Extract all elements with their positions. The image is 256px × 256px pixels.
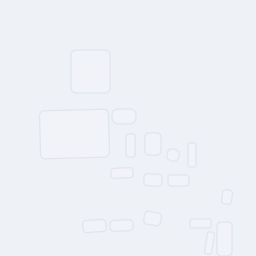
button[interactable]: Item 3 xyxy=(112,109,136,124)
button[interactable]: Item 9 xyxy=(144,174,162,186)
button[interactable]: Item 5 xyxy=(145,133,161,155)
button[interactable]: Item 14 xyxy=(144,212,161,225)
button[interactable]: Item 15 xyxy=(190,219,211,228)
button[interactable]: Item 8 xyxy=(111,168,133,178)
button[interactable]: Item 7 xyxy=(188,143,196,167)
button[interactable]: Item 4 xyxy=(126,134,135,157)
button[interactable]: Item 17 xyxy=(217,222,232,256)
button[interactable]: Item 11 xyxy=(222,190,232,204)
button[interactable]: Item 10 xyxy=(168,175,189,186)
button[interactable]: Item 13 xyxy=(110,220,133,231)
button[interactable]: Item 16 xyxy=(206,232,213,254)
button[interactable]: Item 6 xyxy=(167,149,179,161)
button[interactable]: Item 1 xyxy=(71,50,110,93)
button[interactable]: Item 12 xyxy=(83,220,106,232)
